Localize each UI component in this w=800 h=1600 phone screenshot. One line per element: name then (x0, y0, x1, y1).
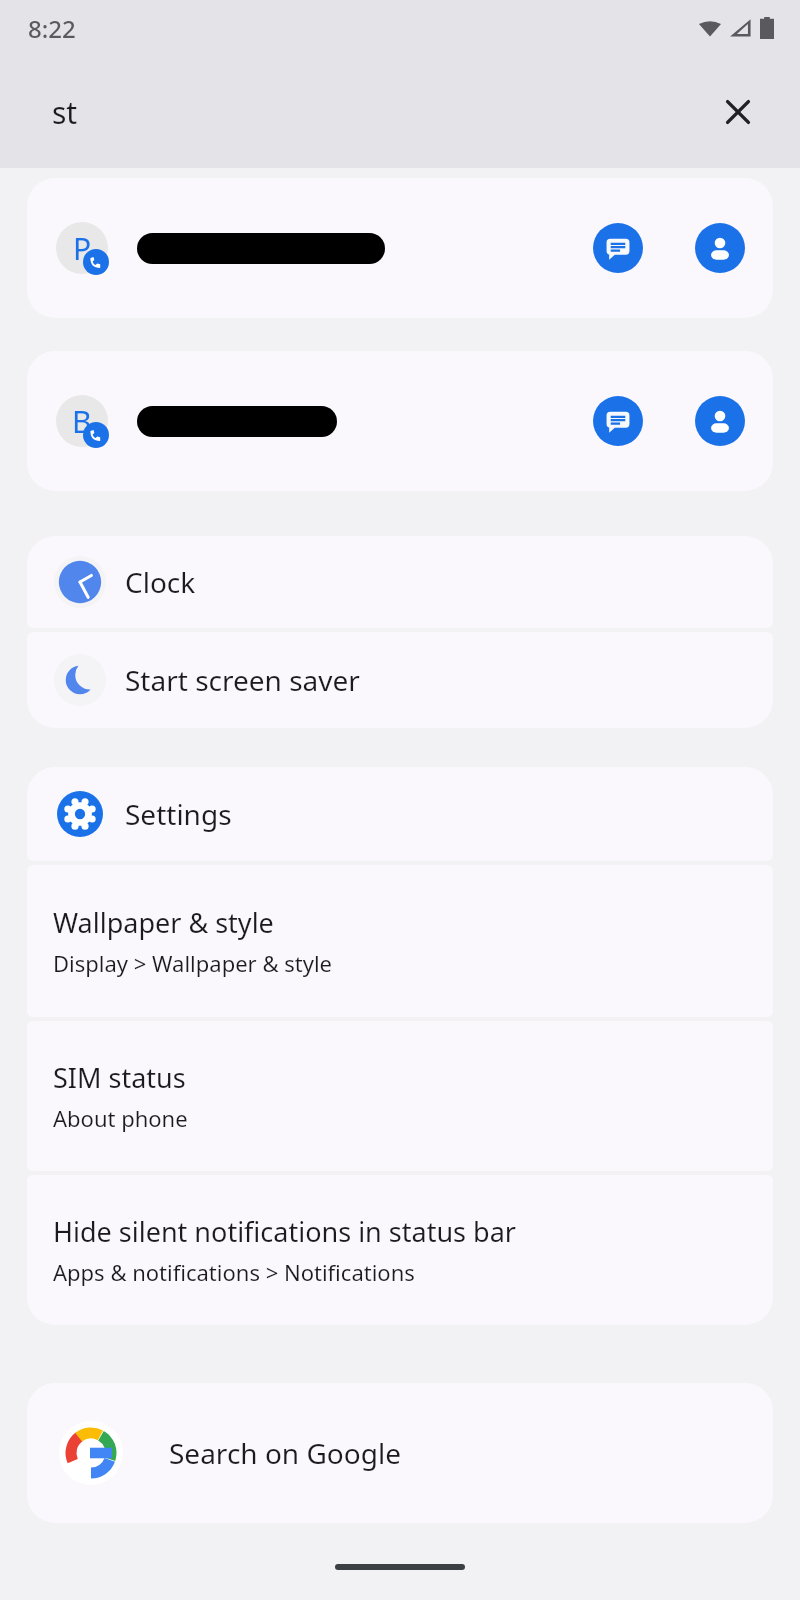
button[interactable]: Clear search (714, 88, 762, 136)
button[interactable]: Open contact (695, 223, 745, 273)
staticText: 8:22 (28, 12, 76, 45)
staticText: Apps & notifications > Notifications (53, 1257, 415, 1287)
button[interactable]: Message (593, 223, 643, 273)
staticText: Start screen saver (125, 661, 360, 699)
staticText: Settings (125, 795, 232, 833)
staticText: B (72, 401, 92, 442)
button[interactable]: Start screen saver (27, 632, 773, 728)
button[interactable]: P (27, 178, 773, 318)
button[interactable]: B (27, 351, 773, 491)
staticText: st (52, 92, 78, 133)
button[interactable]: Clock (27, 536, 773, 628)
button[interactable]: Open contact (695, 396, 745, 446)
staticText: Wallpaper & style (53, 904, 274, 941)
button[interactable]: Message (593, 396, 643, 446)
staticText: SIM status (53, 1059, 186, 1096)
staticText: About phone (53, 1103, 188, 1133)
button[interactable]: Hide silent notifications in status bar (27, 1175, 773, 1325)
staticText: Clock (125, 563, 196, 601)
button[interactable]: Search on Google (27, 1383, 773, 1523)
staticText: Hide silent notifications in status bar (53, 1213, 516, 1250)
staticText: Search on Google (169, 1434, 401, 1472)
button[interactable]: Settings (27, 767, 773, 861)
staticText: P (73, 228, 92, 269)
button[interactable]: SIM status (27, 1021, 773, 1171)
staticText: Display > Wallpaper & style (53, 948, 333, 978)
button[interactable]: Wallpaper & style (27, 865, 773, 1017)
